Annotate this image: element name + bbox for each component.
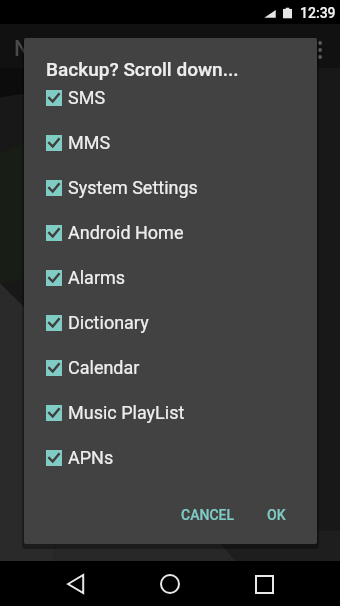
button[interactable]: CANCEL [162, 499, 251, 531]
button[interactable]: SMS [24, 75, 317, 120]
staticText: System Settings [68, 177, 198, 198]
button[interactable]: Calendar [24, 345, 317, 390]
staticText: Alarms [68, 267, 126, 288]
staticText: Backup? Scroll down... [46, 58, 239, 80]
button[interactable]: APNs [24, 435, 317, 480]
button[interactable]: Back [56, 564, 96, 604]
staticText: 12:39 [300, 5, 336, 21]
staticText: APNs [68, 447, 114, 468]
staticText: Music PlayList [68, 402, 185, 423]
button[interactable]: Android Home [24, 210, 317, 255]
button[interactable]: Music PlayList [24, 390, 317, 435]
staticText: MMS [68, 132, 111, 153]
staticText: Calendar [68, 357, 140, 378]
staticText: CANCEL [181, 507, 235, 523]
staticText: OK [267, 507, 286, 523]
staticText: Nandroid Manager [14, 36, 197, 62]
button[interactable]: OK [251, 499, 302, 531]
button[interactable]: Home [150, 564, 190, 604]
button[interactable]: Alarms [24, 255, 317, 300]
staticText: Dictionary [68, 312, 149, 333]
button[interactable]: Recent apps [244, 564, 284, 604]
button[interactable]: Dictionary [24, 300, 317, 345]
button[interactable]: MMS [24, 120, 317, 165]
staticText: SMS [68, 87, 106, 108]
staticText: Android Home [68, 222, 184, 243]
button[interactable]: System Settings [24, 165, 317, 210]
